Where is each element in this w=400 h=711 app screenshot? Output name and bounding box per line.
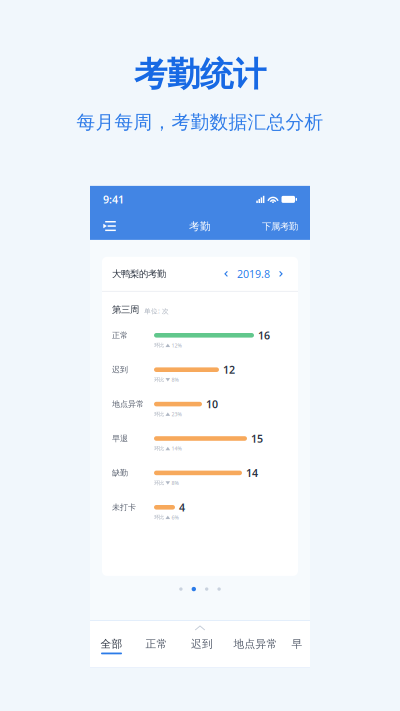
staticText: 下属考勤 [262,221,298,232]
staticText: 16 [258,328,270,342]
staticText: 4 [179,500,185,514]
staticText: 15 [251,431,263,446]
staticText: 14 [246,466,258,480]
staticText: 12 [223,363,235,377]
staticText: 9:41 [103,192,124,206]
button[interactable]: 迟到 [180,635,224,657]
button[interactable]: 下属考勤 [262,214,298,238]
button[interactable]: 上一月 [219,266,233,282]
staticText: 大鸭梨的考勤 [112,268,166,280]
button[interactable]: 全部 [90,635,133,657]
staticText: 2019.8 [237,267,270,281]
staticText: 迟到 [112,365,128,375]
button[interactable]: 正常 [133,635,180,657]
staticText: 23% [172,411,182,418]
staticText: 早 [291,637,302,650]
staticText: 6% [172,514,179,521]
staticText: 正常 [112,330,128,340]
staticText: 地点异常 [233,637,277,650]
staticText: 考勤 [189,220,211,233]
button[interactable]: 早 [287,635,307,657]
staticText: 迟到 [191,637,213,650]
staticText: 地点异常 [112,399,144,409]
staticText: 8% [172,479,179,486]
staticText: 考勤统计 [134,54,266,95]
staticText: 8% [172,376,179,383]
staticText: 14% [172,445,182,452]
staticText: 每月每周，考勤数据汇总分析 [76,111,323,134]
button[interactable]: 菜单 [102,214,138,238]
staticText: 环比 [154,480,164,486]
staticText: 未打卡 [112,502,136,512]
button[interactable]: 地点异常 [224,635,287,657]
staticText: 10 [206,397,218,411]
staticText: 早退 [112,434,128,443]
staticText: 12% [172,342,182,349]
staticText: 环比 [154,445,164,452]
staticText: 全部 [100,637,122,650]
staticText: 环比 [154,514,164,521]
staticText: 单位: 次 [144,306,169,315]
button[interactable]: 下一月 [274,266,288,282]
staticText: 环比 [154,411,164,417]
staticText: 第三周 [112,304,139,315]
staticText: 环比 [154,376,164,383]
staticText: 缺勤 [112,468,128,478]
staticText: 环比 [154,342,164,349]
staticText: 正常 [145,637,167,650]
